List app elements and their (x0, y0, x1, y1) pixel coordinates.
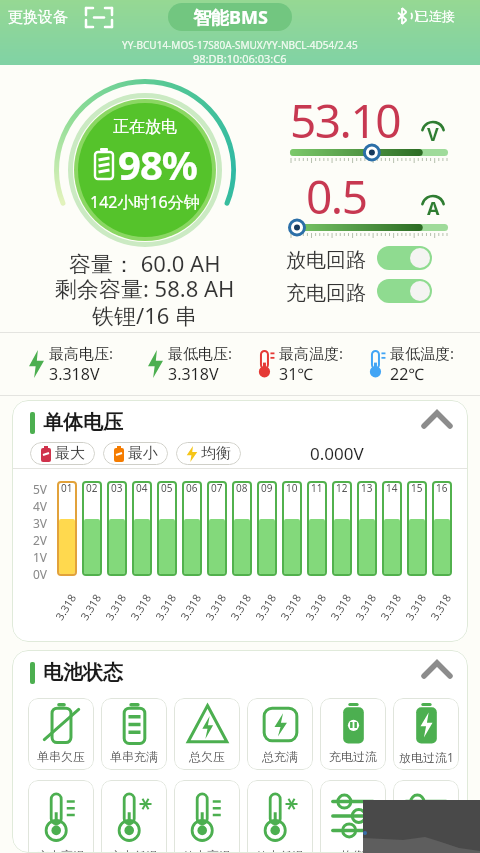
staticText: 3.318 (352, 586, 382, 623)
staticText: 11 (311, 481, 323, 495)
button[interactable]: 放电过流1 (393, 698, 459, 770)
staticText: 铁锂/16 串 (92, 300, 198, 330)
button[interactable] (86, 8, 112, 27)
staticText: 已连接 (416, 8, 455, 24)
staticText: 3.318V (49, 363, 100, 385)
staticText: 03 (111, 481, 123, 495)
staticText: 单串充满 (110, 749, 158, 764)
staticText: 均衡 (341, 848, 365, 853)
staticText: 3.318 (327, 586, 357, 623)
staticText: 3.318 (227, 586, 257, 623)
staticText: 放电高温 (183, 848, 231, 853)
staticText: 3.318V (168, 363, 219, 385)
button[interactable]: 均衡 (176, 442, 241, 465)
staticText: 1V (33, 549, 48, 566)
button[interactable] (422, 660, 452, 680)
staticText: 正在放电 (113, 117, 177, 137)
button[interactable]: 更换设备 (8, 8, 68, 27)
staticText: 3.318 (102, 586, 132, 623)
staticText: 10 (286, 481, 298, 495)
staticText: 3.318 (377, 586, 407, 623)
staticText: 05 (161, 481, 173, 495)
staticText: 01 (61, 481, 73, 495)
staticText: 3.318 (177, 586, 207, 623)
staticText: 均衡 (201, 444, 231, 463)
staticText: 07 (211, 481, 223, 495)
staticText: 最低温度: (390, 343, 455, 363)
staticText: 3.318 (52, 586, 82, 623)
button[interactable]: 总充满 (247, 698, 313, 770)
staticText: 最高电压: (49, 343, 114, 363)
staticText: 0.000V (310, 442, 364, 465)
staticText: 剩余容量: 58.8 AH (55, 273, 235, 303)
staticText: 最高温度: (279, 343, 344, 363)
staticText: 0V (33, 566, 48, 583)
staticText: 总欠压 (189, 749, 225, 764)
button[interactable] (422, 410, 452, 430)
staticText: 充电过流 (329, 749, 377, 764)
button[interactable]: 智能BMS (168, 3, 292, 31)
staticText: 22℃ (390, 363, 425, 385)
staticText: 14 (386, 481, 398, 495)
staticText: 充电高温 (37, 848, 85, 853)
staticText: 智能BMS (193, 5, 268, 30)
staticText: 3.318 (202, 586, 232, 623)
staticText: 3.318 (277, 586, 307, 623)
button[interactable]: 充电低温 (101, 780, 167, 853)
button[interactable] (377, 246, 432, 270)
button[interactable]: 均衡 (320, 780, 386, 853)
staticText: 充电低温 (110, 848, 158, 853)
staticText: 15 (411, 481, 423, 495)
staticText: 08 (236, 481, 248, 495)
button[interactable]: 最大 (30, 442, 95, 465)
button[interactable]: 放电低温 (247, 780, 313, 853)
staticText: 04 (136, 481, 148, 495)
staticText: 16 (436, 481, 448, 495)
staticText: 放电低温 (256, 848, 304, 853)
staticText: YY-BCU14-MOS-17S80A-SMUX/YY-NBCL-4D54/2.… (122, 38, 358, 52)
button[interactable]: 单串充满 (101, 698, 167, 770)
staticText: 4V (33, 498, 48, 515)
staticText: 3V (33, 515, 48, 532)
staticText: 3.318 (427, 586, 457, 623)
staticText: 98% (118, 137, 197, 191)
staticText: 最大 (55, 444, 85, 463)
staticText: 电池状态 (43, 660, 123, 685)
staticText: 最小 (128, 444, 158, 463)
staticText: 3.318 (252, 586, 282, 623)
staticText: 单串欠压 (37, 749, 85, 764)
button[interactable]: 已连接 (396, 7, 455, 25)
staticText: 单体电压 (43, 410, 123, 435)
staticText: 13 (361, 481, 373, 495)
button[interactable]: 单串欠压 (28, 698, 94, 770)
staticText: 3.318 (127, 586, 157, 623)
staticText: 142小时16分钟 (90, 191, 200, 213)
staticText: 3.318 (302, 586, 332, 623)
staticText: 09 (261, 481, 273, 495)
staticText: 53.10 (290, 89, 401, 152)
staticText: 3.318 (402, 586, 432, 623)
staticText: 容量： 60.0 AH (69, 248, 221, 278)
staticText: 3.318 (77, 586, 107, 623)
staticText: 5V (33, 481, 48, 498)
staticText: V (427, 122, 439, 147)
staticText: 12 (336, 481, 348, 495)
staticText: 3.318 (152, 586, 182, 623)
staticText: 最低电压: (168, 343, 233, 363)
staticText: 0.5 (306, 165, 367, 228)
staticText: 总充满 (262, 749, 298, 764)
staticText: 31℃ (279, 363, 314, 385)
staticText: 2V (33, 532, 48, 549)
button[interactable]: 最小 (103, 442, 168, 465)
button[interactable]: 总欠压 (174, 698, 240, 770)
staticText: 充电回路 (286, 281, 366, 306)
button[interactable]: 均衡 (393, 780, 459, 853)
staticText: 放电回路 (286, 248, 366, 273)
staticText: 02 (86, 481, 98, 495)
button[interactable] (377, 279, 432, 303)
staticText: 06 (186, 481, 198, 495)
button[interactable]: 充电过流 (320, 698, 386, 770)
button[interactable]: 放电高温 (174, 780, 240, 853)
button[interactable]: 充电高温 (28, 780, 94, 853)
